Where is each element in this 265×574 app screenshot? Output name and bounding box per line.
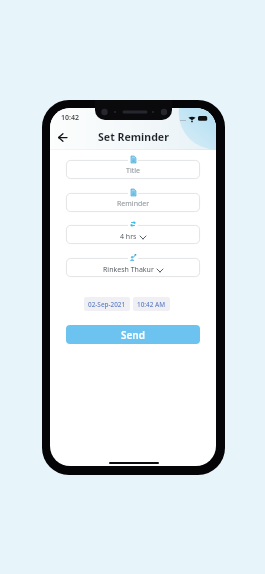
- staticText: 10:42: [61, 113, 79, 123]
- button[interactable]: 10:42 AM: [133, 297, 170, 311]
- staticText: Title: [126, 166, 140, 176]
- staticText: Rinkesh Thakur: [103, 265, 154, 275]
- button[interactable]: Rinkesh Thakur: [66, 258, 200, 277]
- button[interactable]: 4 hrs: [66, 225, 200, 244]
- staticText: 02-Sep-2021: [88, 300, 126, 309]
- button[interactable]: 02-Sep-2021: [84, 297, 130, 311]
- staticText: Reminder: [117, 199, 150, 209]
- staticText: 4 hrs: [120, 232, 137, 242]
- button[interactable]: Send: [66, 325, 200, 344]
- staticText: Send: [121, 328, 145, 342]
- button[interactable]: Reminder: [66, 193, 200, 212]
- button[interactable]: Title: [66, 160, 200, 179]
- staticText: 10:42 AM: [137, 300, 166, 309]
- staticText: Set Reminder: [98, 130, 169, 144]
- button[interactable]: Back: [54, 129, 70, 145]
